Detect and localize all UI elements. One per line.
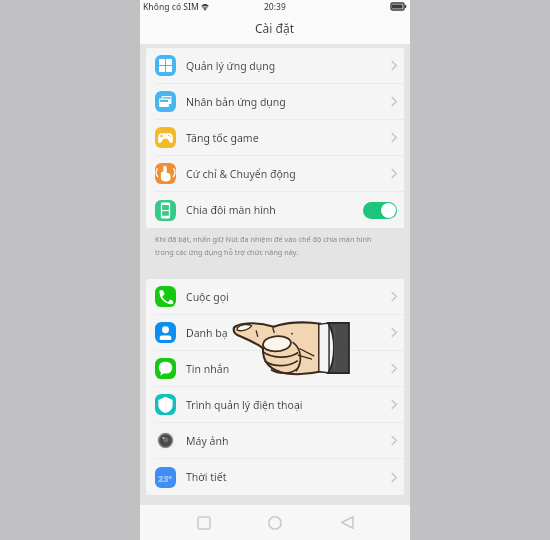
- button[interactable]: Nhân bản ứng dụng: [146, 84, 404, 120]
- staticText: Thời tiết: [186, 470, 227, 484]
- staticText: Danh bạ: [186, 326, 228, 340]
- staticText: Cuộc gọi: [186, 290, 229, 304]
- staticText: Khi đã bật, nhấn giữ Nút đa nhiệm để vào…: [155, 234, 372, 244]
- staticText: trong các ứng dụng hỗ trợ chức năng này.: [155, 247, 299, 257]
- button[interactable]: Cứ chỉ & Chuyển động: [146, 156, 404, 192]
- button[interactable]: Quản lý ứng dụng: [146, 48, 404, 84]
- button[interactable]: Máy ảnh: [146, 423, 404, 459]
- button[interactable]: Danh bạ: [146, 315, 404, 351]
- staticText: Tin nhắn: [186, 362, 230, 376]
- button[interactable]: Cuộc gọi: [146, 279, 404, 315]
- button[interactable]: Chia đôi màn hình toggle: [363, 202, 397, 219]
- staticText: 23°: [158, 472, 173, 484]
- staticText: Trình quản lý điện thoại: [186, 398, 303, 412]
- button[interactable]: Tăng tốc game: [146, 120, 404, 156]
- button[interactable]: Chia đôi màn hình: [146, 192, 404, 228]
- staticText: Quản lý ứng dụng: [186, 59, 276, 73]
- button[interactable]: Back: [327, 505, 367, 540]
- staticText: Cứ chỉ & Chuyển động: [186, 167, 296, 181]
- button[interactable]: Recents: [184, 505, 224, 540]
- staticText: Không có SIM: [143, 1, 199, 13]
- button[interactable]: Home: [255, 505, 295, 540]
- button[interactable]: Tin nhắn: [146, 351, 404, 387]
- staticText: Chia đôi màn hình: [186, 203, 276, 217]
- staticText: Máy ảnh: [186, 434, 229, 448]
- staticText: 20:39: [264, 1, 286, 13]
- button[interactable]: 23°: [146, 459, 404, 495]
- staticText: Nhân bản ứng dụng: [186, 95, 286, 109]
- staticText: Cài đặt: [255, 20, 295, 36]
- button[interactable]: Trình quản lý điện thoại: [146, 387, 404, 423]
- staticText: Tăng tốc game: [186, 131, 259, 145]
